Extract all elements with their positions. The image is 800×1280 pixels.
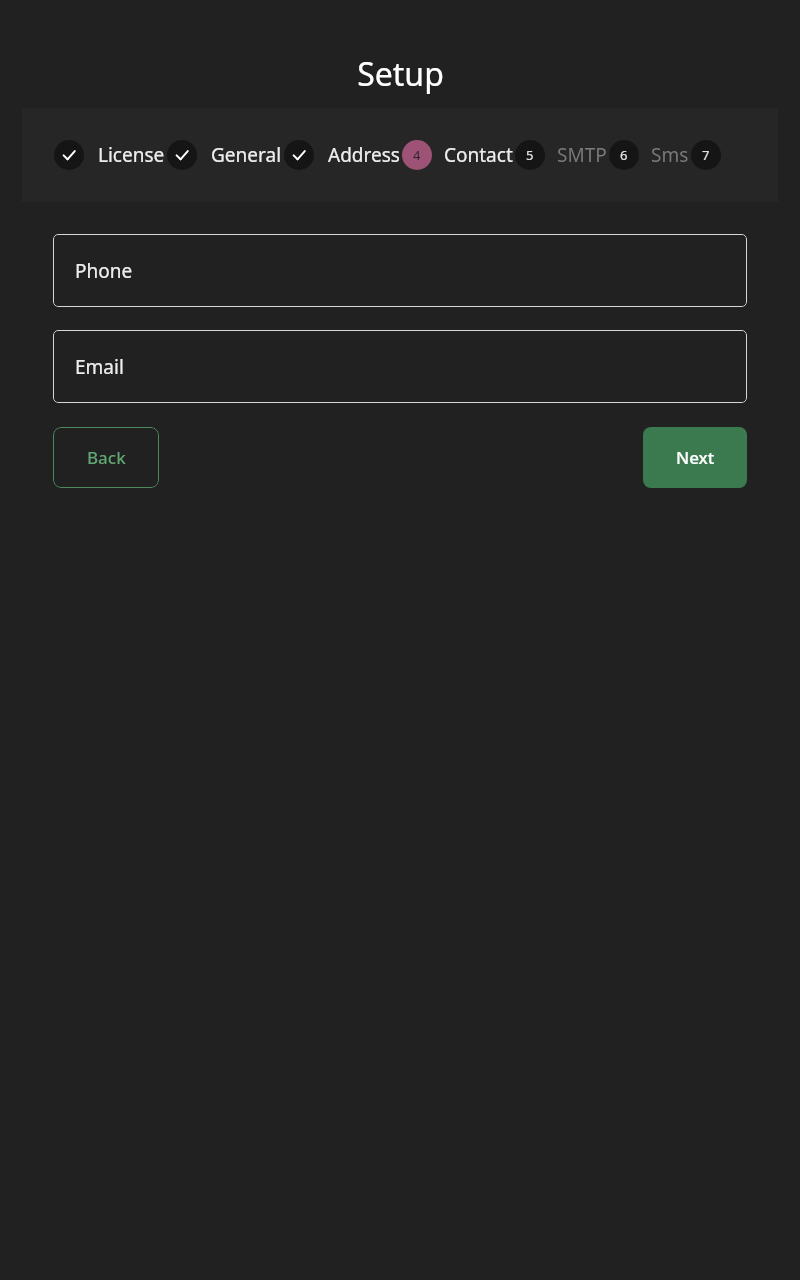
staticText: Email (75, 354, 124, 380)
staticText: 4 (413, 146, 421, 164)
staticText: Contact (444, 142, 513, 168)
staticText: 5 (526, 146, 534, 164)
staticText: Address (328, 142, 400, 168)
staticText: Back (87, 446, 126, 469)
staticText: Setup (357, 52, 444, 96)
button[interactable]: Phone (53, 234, 747, 307)
button[interactable]: Email (53, 330, 747, 403)
staticText: Phone (75, 258, 133, 284)
button[interactable]: Back (53, 427, 159, 488)
button[interactable]: 4 (402, 140, 513, 170)
button[interactable]: General (167, 140, 282, 170)
button[interactable]: Next (643, 427, 747, 488)
button[interactable]: 6 (609, 140, 689, 170)
staticText: General (211, 142, 282, 168)
button[interactable]: License (54, 140, 165, 170)
button[interactable]: Address (284, 140, 400, 170)
button[interactable]: 5 (515, 140, 607, 170)
staticText: License (98, 142, 165, 168)
staticText: Sms (651, 142, 689, 168)
staticText: 6 (620, 146, 628, 164)
staticText: SMTP (557, 142, 607, 168)
staticText: Next (676, 446, 715, 469)
staticText: 7 (702, 146, 710, 164)
